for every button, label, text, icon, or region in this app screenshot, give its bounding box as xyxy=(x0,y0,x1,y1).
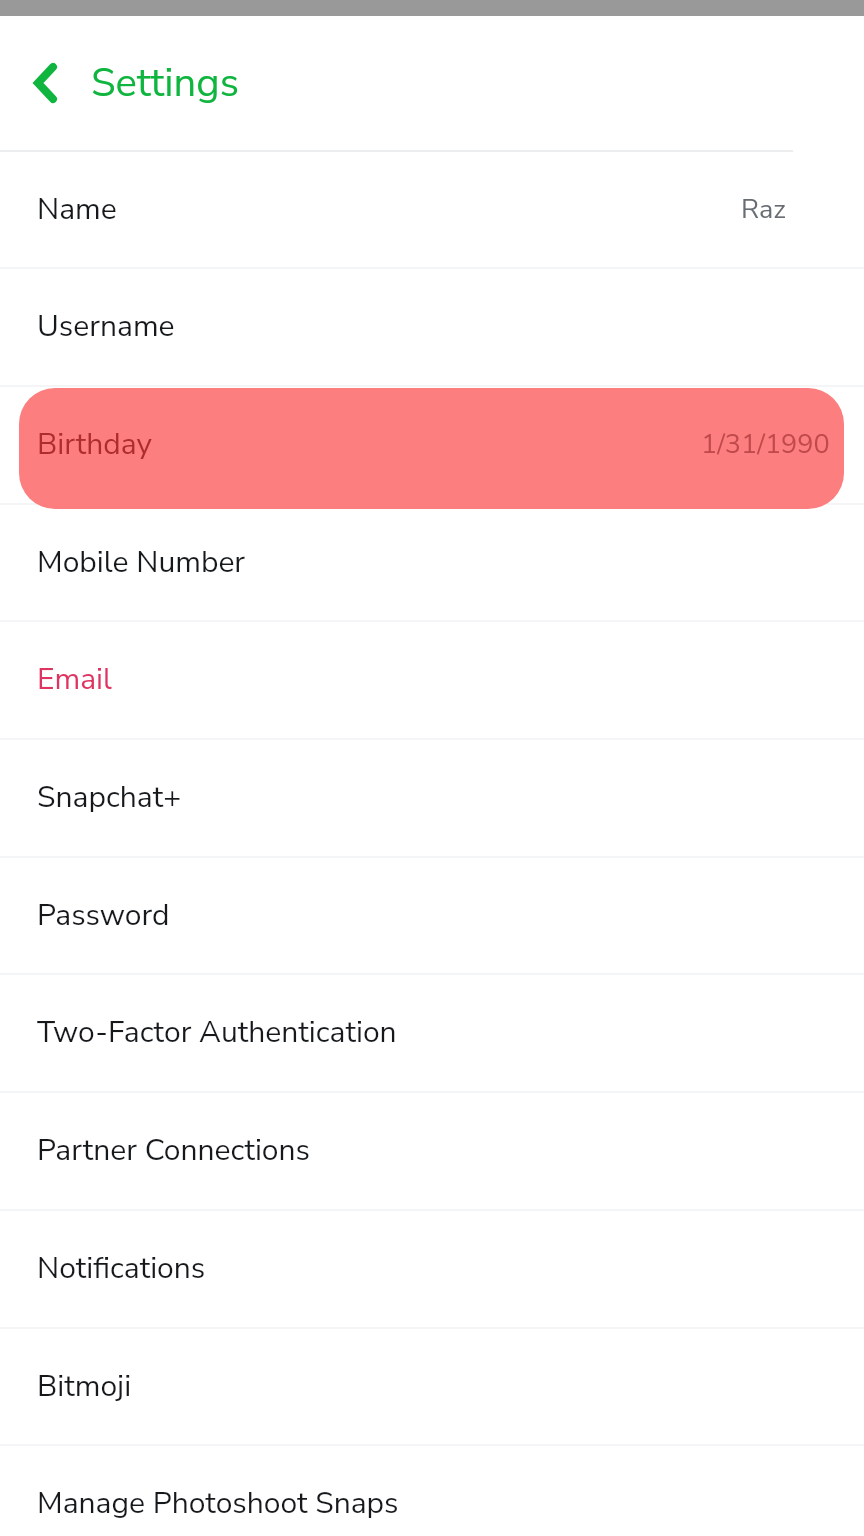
button[interactable]: Notifications xyxy=(0,1209,864,1327)
staticText: Email xyxy=(37,659,112,700)
staticText: 1/31/1990 xyxy=(701,426,830,463)
button[interactable]: Birthday xyxy=(0,385,864,503)
staticText: Mobile Number xyxy=(37,542,246,583)
button[interactable]: Partner Connections xyxy=(0,1091,864,1209)
staticText: Password xyxy=(37,895,170,936)
staticText: Username xyxy=(37,306,175,347)
button[interactable]: Name xyxy=(0,150,864,268)
button[interactable]: Snapchat+ xyxy=(0,738,864,856)
staticText: Birthday xyxy=(37,424,152,465)
staticText: Notifications xyxy=(37,1248,206,1289)
staticText: Bitmoji xyxy=(37,1366,132,1407)
staticText: Raz xyxy=(741,191,786,228)
button[interactable]: Manage Photoshoot Snaps xyxy=(0,1444,864,1536)
staticText: Partner Connections xyxy=(37,1130,311,1171)
staticText: Settings xyxy=(91,56,240,110)
button[interactable]: Password xyxy=(0,856,864,974)
button[interactable]: Username xyxy=(0,267,864,385)
staticText: Manage Photoshoot Snaps xyxy=(37,1483,399,1524)
button[interactable]: Email xyxy=(0,620,864,738)
staticText: Name xyxy=(37,189,117,230)
button[interactable]: Bitmoji xyxy=(0,1327,864,1445)
button[interactable]: Mobile Number xyxy=(0,503,864,621)
button[interactable]: Two-Factor Authentication xyxy=(0,973,864,1091)
staticText: Two-Factor Authentication xyxy=(37,1012,397,1053)
staticText: Snapchat+ xyxy=(37,777,182,818)
button[interactable]: Back xyxy=(17,56,73,110)
button[interactable]: Settings xyxy=(91,56,240,110)
